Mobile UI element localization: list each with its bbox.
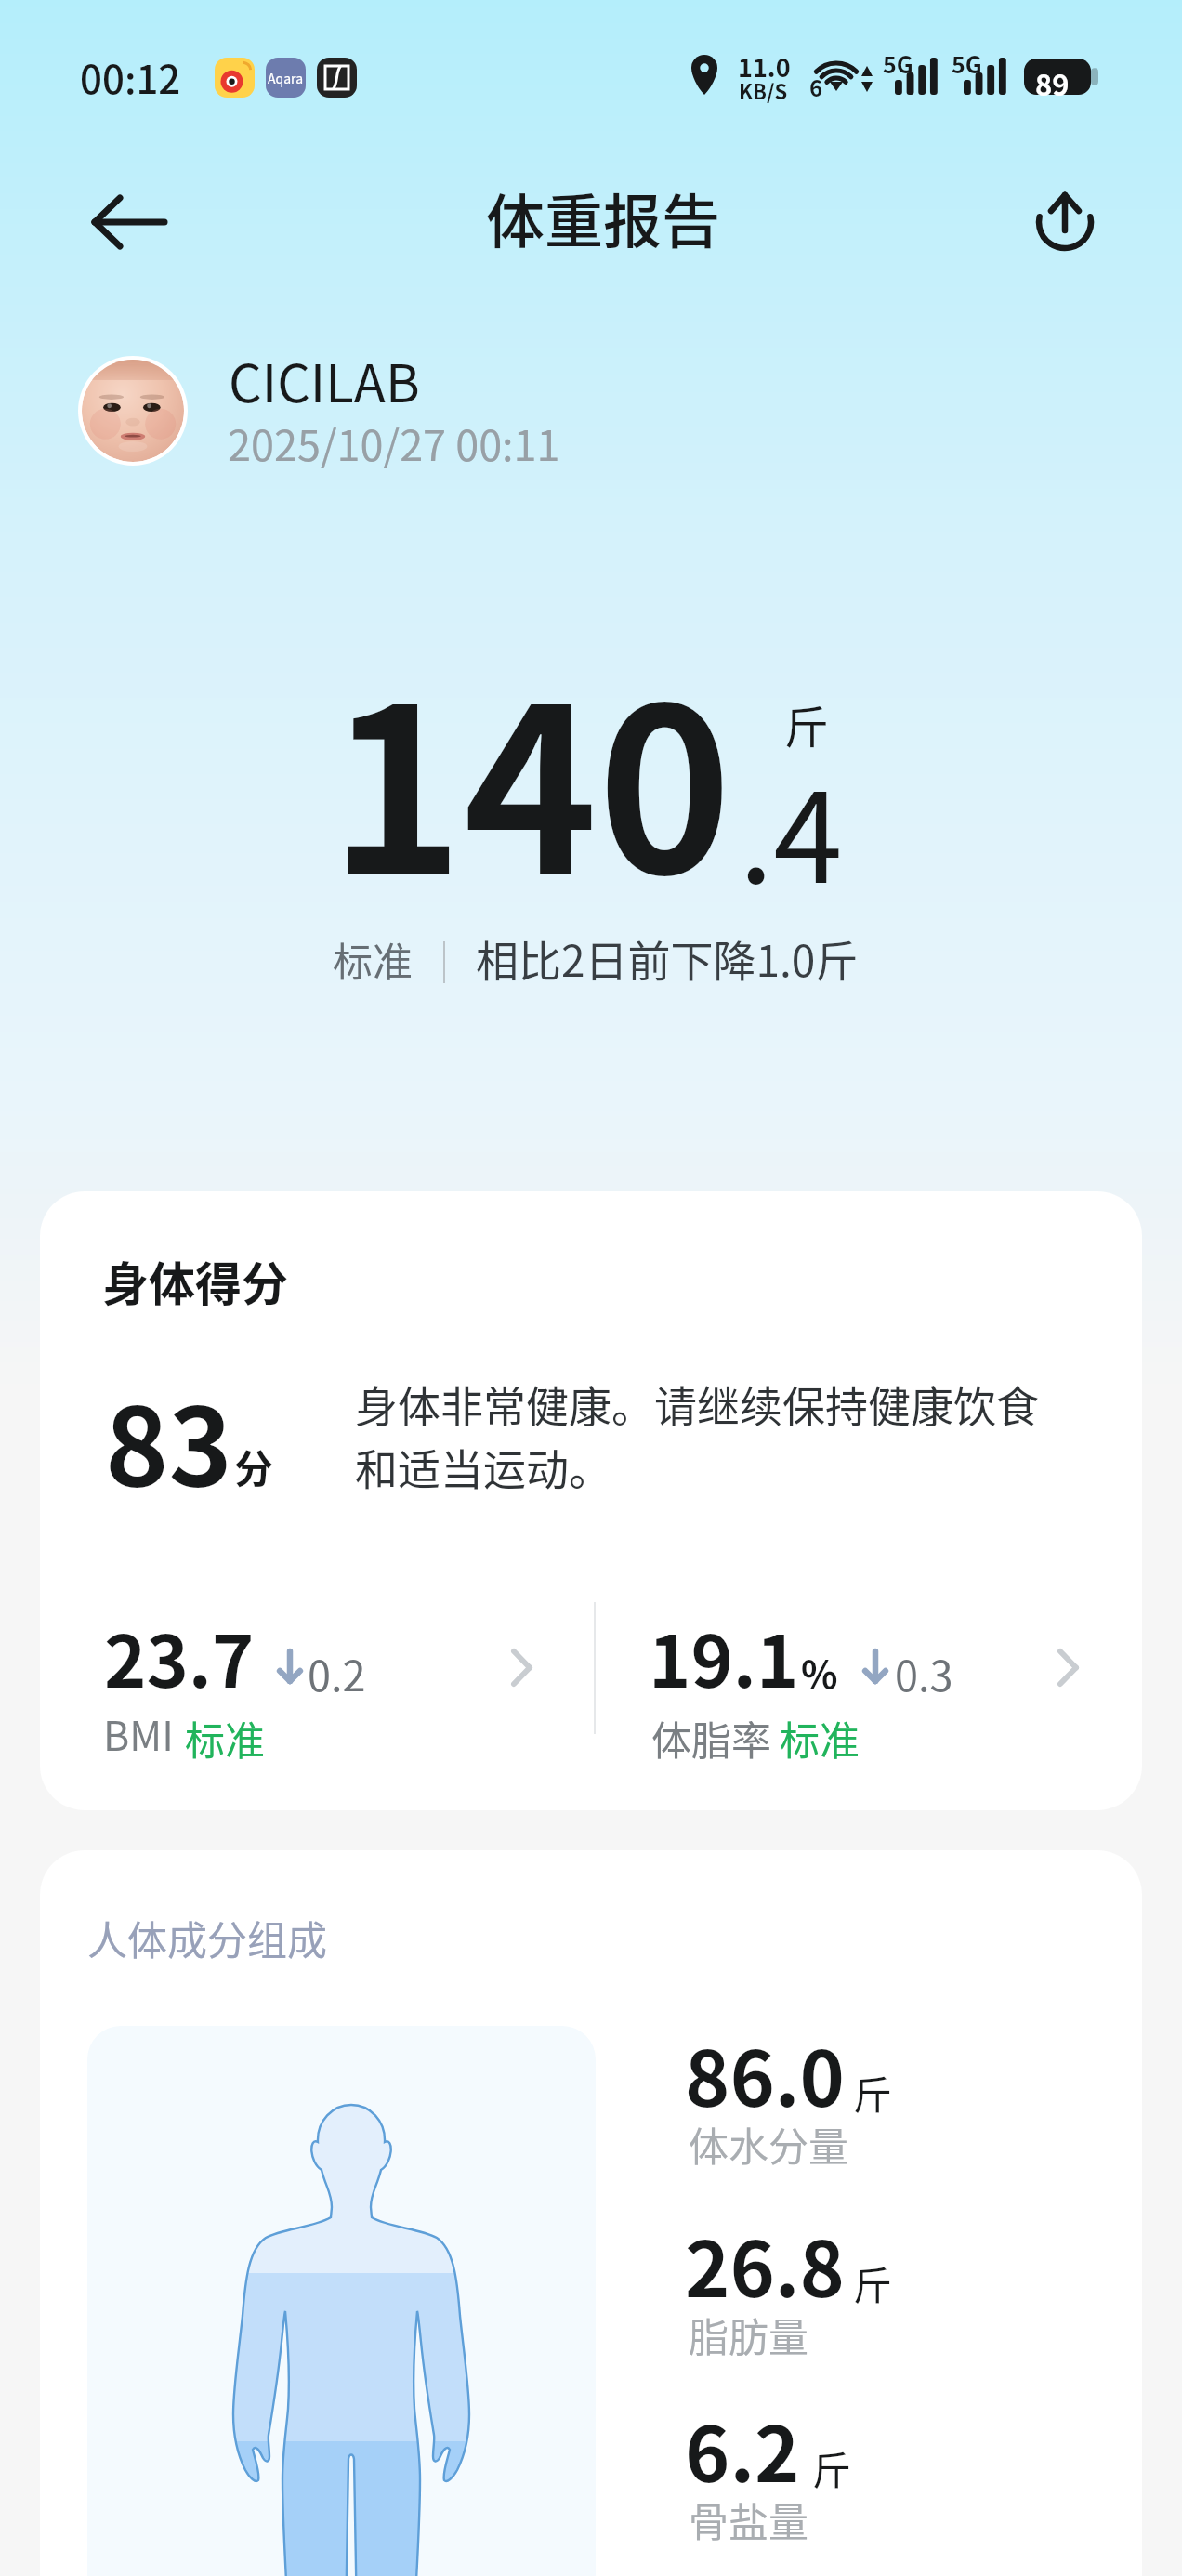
staticText: 86.0 — [685, 2018, 845, 2129]
staticText: 斤 — [853, 2064, 893, 2121]
staticText: 身体得分 — [102, 1247, 288, 1314]
staticText: KB/S — [739, 75, 788, 105]
staticText: Aqara — [268, 69, 304, 87]
staticText: 00:12 — [80, 48, 181, 105]
staticText: 5G — [952, 46, 982, 80]
staticText: 0.3 — [895, 1643, 953, 1703]
staticText: 标准 — [780, 1709, 860, 1767]
staticText: 脂肪量 — [689, 2306, 808, 2363]
staticText: 89 — [1035, 62, 1070, 99]
staticText: 分 — [234, 1438, 274, 1494]
staticText: 标准 — [333, 930, 413, 988]
staticText: 相比2日前下降1.0斤 — [476, 927, 859, 990]
staticText: 斤 — [853, 2254, 893, 2311]
staticText: BMI — [103, 1704, 174, 1762]
staticText: .4 — [739, 739, 843, 919]
staticText: 19.1 — [649, 1605, 799, 1708]
staticText: 体水分量 — [689, 2115, 848, 2173]
staticText: 斤 — [812, 2439, 852, 2496]
staticText: 23.7 — [104, 1605, 255, 1708]
staticText: 6.2 — [685, 2394, 800, 2504]
staticText: 26.8 — [685, 2209, 845, 2320]
button[interactable]: Share — [1020, 167, 1123, 269]
staticText: 140 — [329, 610, 732, 940]
staticText: 骨盐量 — [689, 2491, 808, 2548]
staticText: 6 — [809, 71, 823, 103]
staticText: 斤 — [784, 691, 830, 756]
staticText: 0.2 — [308, 1643, 366, 1703]
button[interactable]: Profile photo — [78, 356, 188, 466]
staticText: 体重报告 — [486, 175, 720, 259]
button[interactable] — [635, 1593, 1136, 1751]
button[interactable] — [88, 1593, 590, 1751]
staticText: % — [801, 1644, 838, 1699]
staticText: 2025/10/27 00:11 — [228, 413, 560, 473]
button[interactable]: Back — [58, 167, 167, 277]
staticText: 83 — [105, 1360, 232, 1517]
staticText: 标准 — [185, 1709, 265, 1767]
staticText: 身体非常健康。请继续保持健康饮食和适当运动。 — [355, 1373, 1054, 1497]
staticText: 体脂率 — [651, 1709, 771, 1767]
staticText: 11.0 — [738, 48, 791, 85]
button[interactable]: CICILAB — [229, 342, 420, 417]
staticText: 5G — [883, 46, 913, 80]
staticText: 人体成分组成 — [87, 1909, 327, 1966]
